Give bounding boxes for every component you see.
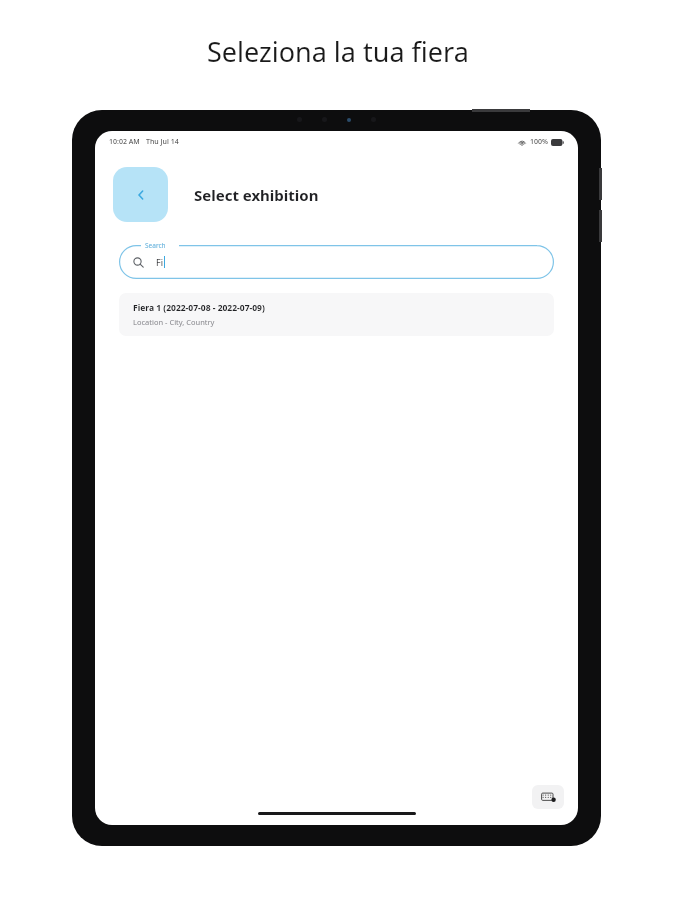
staticText: Fi — [156, 256, 163, 268]
staticText: Thu Jul 14 — [146, 137, 179, 147]
staticText: Seleziona la tua fiera — [207, 33, 469, 70]
button[interactable]: Hide keyboard — [532, 785, 564, 809]
staticText: Search — [145, 241, 166, 250]
staticText: Location - City, Country — [133, 317, 215, 327]
staticText: Fiera 1 (2022-07-08 - 2022-07-09) — [133, 302, 265, 314]
button[interactable]: Back — [113, 167, 168, 222]
button[interactable]: Fiera 1 (2022-07-08 - 2022-07-09) — [119, 293, 554, 336]
staticText: 100% — [530, 137, 548, 147]
staticText: 10:02 AM — [109, 137, 140, 147]
button[interactable]: Fi — [133, 245, 554, 279]
staticText: Select exhibition — [194, 185, 319, 205]
